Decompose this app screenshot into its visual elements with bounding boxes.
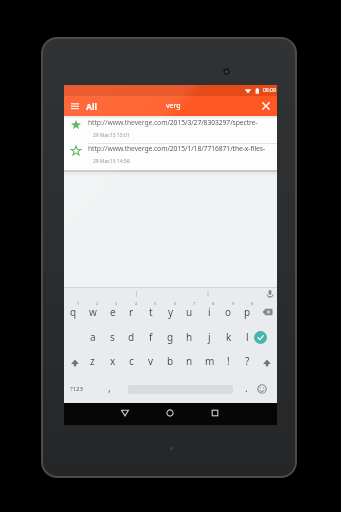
staticText: x: [110, 354, 116, 368]
button[interactable]: f: [141, 328, 160, 346]
staticText: 29 Mar,15 15:01: [93, 132, 130, 139]
staticText: f: [149, 330, 153, 344]
button[interactable]: [258, 355, 276, 371]
button[interactable]: s: [103, 328, 122, 346]
button[interactable]: t: [141, 303, 160, 321]
button[interactable]: b: [161, 352, 180, 370]
button[interactable]: m: [200, 352, 219, 370]
button[interactable]: u: [180, 303, 199, 321]
staticText: p: [244, 305, 251, 319]
button[interactable]: r: [122, 303, 141, 321]
staticText: d: [128, 330, 135, 344]
staticText: 4: [135, 301, 138, 306]
staticText: ?123: [70, 385, 83, 393]
staticText: b: [167, 354, 174, 368]
staticText: l: [246, 330, 249, 344]
staticText: 6: [174, 301, 177, 306]
staticText: u: [186, 305, 193, 319]
button[interactable]: y: [161, 303, 180, 321]
staticText: c: [129, 354, 134, 368]
button[interactable]: e: [103, 303, 122, 321]
staticText: y: [168, 305, 174, 319]
staticText: 9: [232, 301, 235, 306]
button[interactable]: [259, 99, 273, 113]
staticText: 2: [96, 301, 99, 306]
staticText: n: [186, 354, 193, 368]
button[interactable]: [256, 383, 268, 395]
button[interactable]: g: [161, 328, 180, 346]
staticText: 29 Mar,15 14:56: [93, 158, 130, 165]
staticText: 7: [193, 301, 196, 306]
staticText: .: [245, 381, 248, 395]
staticText: v: [148, 354, 154, 368]
staticText: 8: [212, 301, 215, 306]
staticText: 3: [115, 301, 118, 306]
staticText: o: [225, 305, 232, 319]
button[interactable]: [254, 331, 267, 344]
staticText: z: [90, 354, 95, 368]
button[interactable]: x: [103, 352, 122, 370]
staticText: t: [149, 305, 153, 319]
button[interactable]: ?123: [64, 382, 88, 396]
button[interactable]: [64, 143, 277, 170]
button[interactable]: a: [83, 328, 102, 346]
staticText: h: [186, 330, 193, 344]
button[interactable]: w: [83, 303, 102, 321]
button[interactable]: d: [122, 328, 141, 346]
staticText: http://www.theverge.com/2015/3/27/830329…: [88, 118, 277, 127]
button[interactable]: !: [219, 352, 238, 370]
staticText: 0: [251, 301, 254, 306]
button[interactable]: ,: [103, 379, 115, 397]
button[interactable]: [162, 405, 178, 421]
staticText: g: [167, 330, 174, 344]
button[interactable]: v: [141, 352, 160, 370]
button[interactable]: o: [219, 303, 238, 321]
button[interactable]: ?: [238, 352, 257, 370]
button[interactable]: z: [83, 352, 102, 370]
button[interactable]: h: [180, 328, 199, 346]
staticText: 5: [154, 301, 157, 306]
button[interactable]: q: [64, 303, 83, 321]
button[interactable]: i: [200, 303, 219, 321]
staticText: verg: [166, 101, 181, 111]
button[interactable]: [66, 355, 84, 371]
staticText: All: [86, 101, 97, 113]
button[interactable]: [68, 99, 82, 113]
button[interactable]: k: [219, 328, 238, 346]
button[interactable]: l: [238, 328, 257, 346]
staticText: http://www.theverge.com/2015/1/18/771687…: [88, 144, 277, 153]
staticText: r: [129, 305, 134, 319]
staticText: a: [90, 330, 96, 344]
button[interactable]: [258, 303, 277, 321]
staticText: j: [208, 330, 211, 344]
staticText: !: [227, 354, 230, 368]
button[interactable]: .: [240, 379, 252, 397]
staticText: m: [205, 354, 215, 368]
staticText: 1: [77, 301, 80, 306]
button[interactable]: [207, 405, 223, 421]
button[interactable]: j: [200, 328, 219, 346]
staticText: ?: [245, 354, 250, 368]
staticText: w: [89, 305, 97, 319]
staticText: ,: [108, 381, 111, 395]
button[interactable]: c: [122, 352, 141, 370]
staticText: s: [110, 330, 115, 344]
staticText: k: [226, 330, 232, 344]
staticText: e: [110, 305, 116, 319]
button[interactable]: n: [180, 352, 199, 370]
button[interactable]: p: [238, 303, 257, 321]
staticText: q: [70, 305, 77, 319]
staticText: i: [208, 305, 211, 319]
staticText: 00:09: [263, 87, 276, 94]
button[interactable]: [117, 405, 133, 421]
button[interactable]: [64, 116, 277, 143]
